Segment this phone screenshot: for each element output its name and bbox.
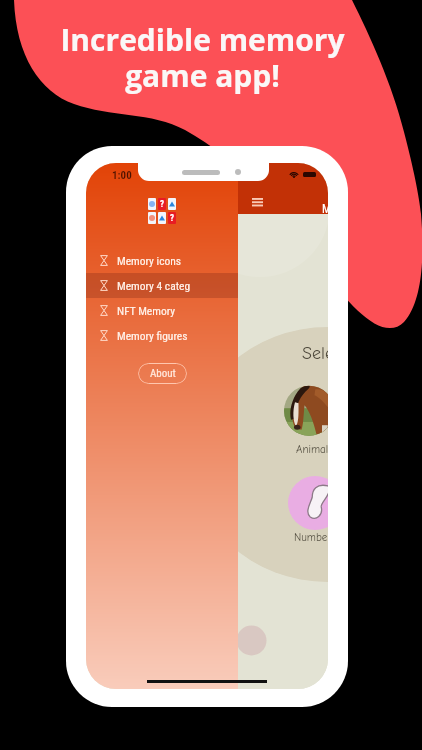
staticText: Numbers [294, 531, 328, 544]
button[interactable]: Memory figures [86, 323, 238, 348]
button[interactable]: Memory 4 categ [86, 273, 238, 298]
staticText: Memory icons [117, 254, 182, 267]
staticText: Memory [322, 202, 328, 216]
staticText: Incredible memory game app! [60, 19, 345, 96]
staticText: ? [160, 199, 165, 210]
button[interactable]: Numbers category [288, 476, 328, 530]
staticText: Animals [296, 443, 328, 456]
staticText: Select a category [302, 343, 328, 364]
staticText: Memory figures [117, 329, 188, 342]
staticText: NFT Memory [117, 304, 176, 317]
button[interactable]: Open navigation drawer [242, 187, 272, 217]
staticText: Memory 4 categ [117, 279, 191, 292]
button[interactable]: Memory icons [86, 248, 238, 273]
button[interactable]: NFT Memory [86, 298, 238, 323]
staticText: 1:00 [112, 169, 132, 182]
button[interactable]: About [138, 363, 187, 384]
staticText: ? [170, 213, 175, 224]
staticText: About [150, 367, 176, 380]
